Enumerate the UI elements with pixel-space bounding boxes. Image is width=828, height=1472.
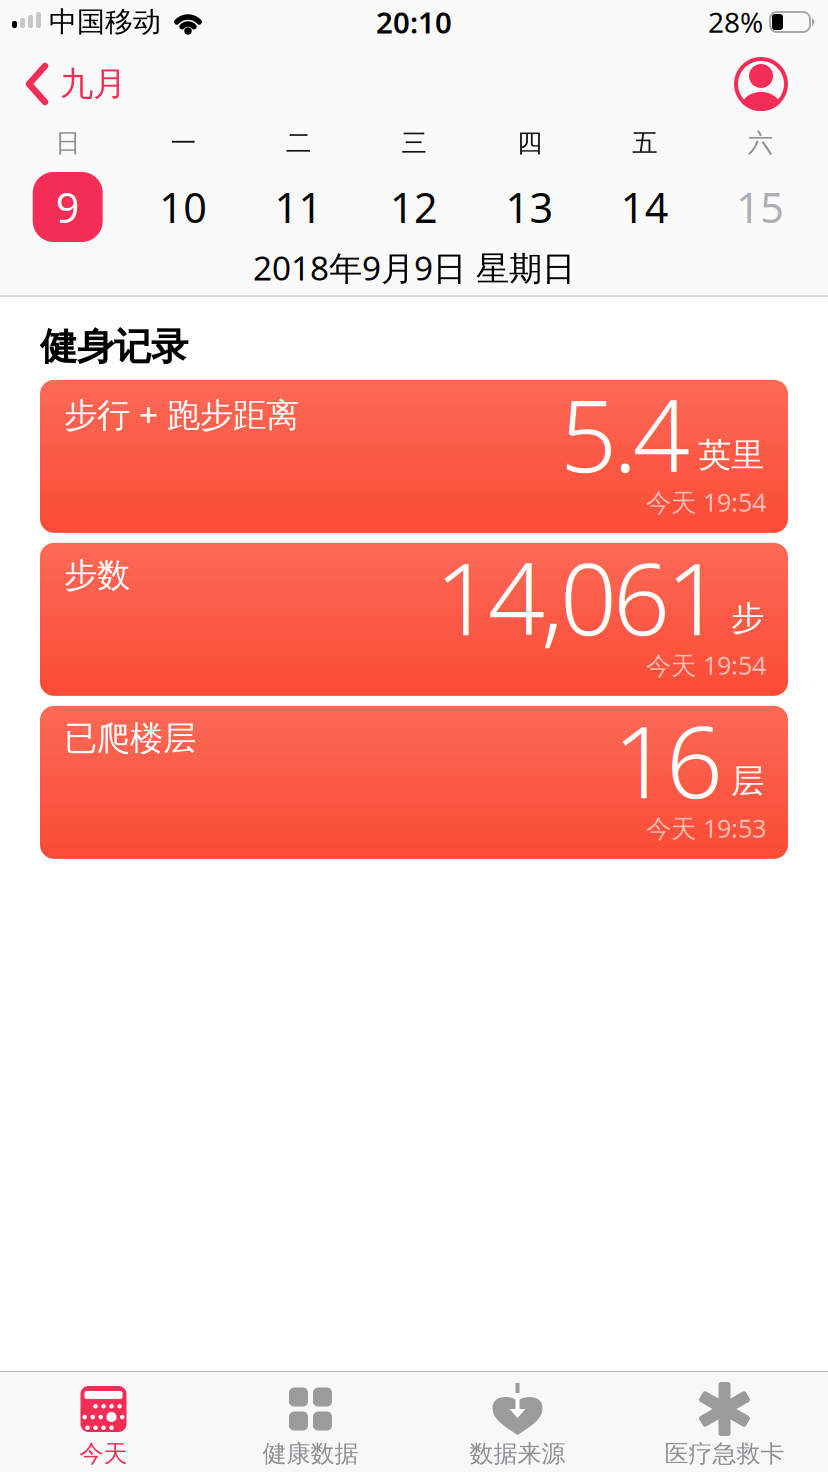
staticText: 一 <box>171 127 196 158</box>
button[interactable]: 15 <box>703 162 818 252</box>
button[interactable]: 步行 + 跑步距离 <box>40 380 788 533</box>
staticText: 日 <box>55 127 80 158</box>
staticText: 2018年9月9日 星期日 <box>253 245 575 290</box>
button[interactable]: 九月 <box>0 63 126 105</box>
staticText: 九月 <box>60 63 126 104</box>
staticText: 步数 <box>64 555 130 596</box>
button[interactable]: 9 <box>10 162 125 252</box>
button[interactable]: 步数 <box>40 543 788 696</box>
staticText: 13 <box>505 180 553 234</box>
staticText: 健身记录 <box>40 324 188 370</box>
staticText: 28% <box>708 3 763 41</box>
staticText: 12 <box>390 180 438 234</box>
staticText: 已爬楼层 <box>64 718 196 759</box>
staticText: 9 <box>56 180 80 234</box>
staticText: 16 <box>613 693 723 826</box>
button[interactable] <box>734 57 828 111</box>
button[interactable]: 11 <box>241 162 356 252</box>
staticText: 二 <box>286 127 311 158</box>
staticText: 健康数据 <box>262 1439 358 1468</box>
staticText: 六 <box>748 127 773 158</box>
staticText: 5.4 <box>560 367 690 500</box>
button[interactable]: 健康数据 <box>207 1372 414 1472</box>
button[interactable]: 12 <box>356 162 472 252</box>
staticText: 步行 + 跑步距离 <box>64 392 299 436</box>
staticText: 15 <box>736 180 784 234</box>
staticText: 四 <box>517 127 542 158</box>
staticText: 今天 19:54 <box>646 648 766 682</box>
button[interactable]: 14 <box>587 162 702 252</box>
staticText: 步 <box>731 598 764 639</box>
staticText: 英里 <box>698 435 764 476</box>
staticText: 层 <box>731 761 764 802</box>
staticText: 今天 19:54 <box>646 485 766 519</box>
staticText: 今天 19:53 <box>646 811 766 845</box>
button[interactable]: 已爬楼层 <box>40 706 788 859</box>
staticText: 中国移动 <box>49 5 161 39</box>
staticText: 三 <box>401 127 426 158</box>
button[interactable]: 医疗急救卡 <box>621 1372 828 1472</box>
staticText: 20:10 <box>376 2 452 41</box>
staticText: 医疗急救卡 <box>664 1439 784 1468</box>
staticText: 14,061 <box>435 530 723 663</box>
button[interactable]: 今天 <box>0 1372 207 1472</box>
staticText: 数据来源 <box>469 1439 565 1468</box>
button[interactable]: 数据来源 <box>414 1372 621 1472</box>
staticText: 14 <box>621 180 669 234</box>
staticText: 11 <box>275 180 323 234</box>
button[interactable]: 13 <box>472 162 587 252</box>
staticText: 10 <box>159 180 207 234</box>
staticText: 五 <box>632 127 657 158</box>
button[interactable]: 10 <box>125 162 241 252</box>
staticText: 今天 <box>79 1439 127 1468</box>
